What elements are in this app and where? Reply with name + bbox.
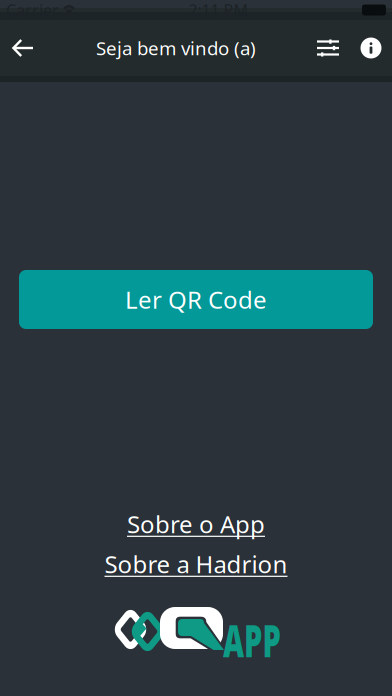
button[interactable]: Ler QR Code	[19, 270, 373, 329]
button[interactable]: Back	[0, 20, 46, 76]
staticText: 2:11 PM	[188, 0, 248, 21]
staticText: Sobre o App	[127, 508, 265, 540]
staticText: Carrier	[6, 0, 59, 21]
staticText: Sobre a Hadrion	[104, 548, 287, 580]
button[interactable]: Sobre a Hadrion	[104, 551, 287, 577]
staticText: Seja bem vindo (a)	[96, 36, 256, 60]
staticText: Ler QR Code	[125, 284, 267, 315]
button[interactable]: Information	[350, 20, 392, 76]
button[interactable]: Filters	[306, 20, 350, 76]
staticText: APP	[223, 611, 311, 669]
button[interactable]: Sobre o App	[127, 511, 265, 537]
